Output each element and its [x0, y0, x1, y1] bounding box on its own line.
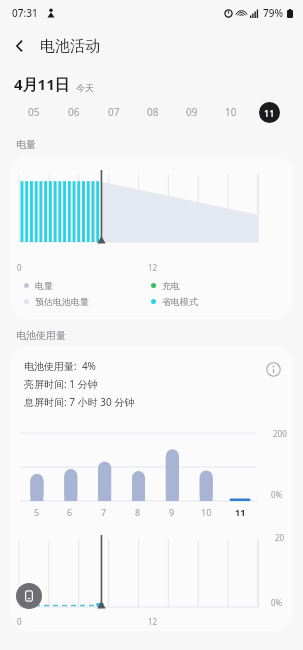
- staticText: 电池使用量: [16, 329, 66, 342]
- button[interactable]: Screen on: [16, 583, 42, 609]
- staticText: 09: [186, 105, 198, 119]
- staticText: 05: [28, 105, 40, 119]
- staticText: 10: [225, 105, 237, 119]
- staticText: 07:31: [12, 6, 38, 20]
- staticText: 0: [17, 262, 22, 273]
- staticText: 0%: [271, 597, 283, 608]
- staticText: 6: [67, 506, 73, 518]
- button[interactable]: Info: [259, 355, 287, 383]
- staticText: 200: [273, 428, 287, 439]
- staticText: 电池活动: [40, 37, 100, 56]
- staticText: 79%: [263, 6, 283, 20]
- staticText: 11: [235, 506, 246, 518]
- button[interactable]: 0: [10, 156, 293, 319]
- staticText: 20: [275, 532, 285, 543]
- staticText: 12: [148, 262, 158, 273]
- staticText: 8: [135, 506, 141, 518]
- button[interactable]: 08: [133, 94, 172, 130]
- staticText: 7: [101, 506, 107, 518]
- button[interactable]: 09: [172, 94, 211, 130]
- staticText: 12: [148, 616, 158, 627]
- staticText: 亮屏时间: 1 分钟: [24, 377, 98, 391]
- staticText: 电量: [35, 280, 53, 291]
- staticText: 省电模式: [162, 296, 198, 307]
- button[interactable]: Back: [0, 26, 40, 66]
- staticText: 5: [34, 506, 40, 518]
- staticText: 息屏时间: 7 小时 30 分钟: [24, 395, 135, 409]
- button[interactable]: 05: [14, 94, 54, 130]
- staticText: 10: [201, 506, 212, 518]
- staticText: 4月11日: [14, 74, 70, 94]
- button[interactable]: 07: [94, 94, 133, 130]
- staticText: 预估电池电量: [35, 296, 89, 307]
- staticText: 06: [68, 105, 80, 119]
- staticText: 0%: [271, 489, 283, 500]
- button[interactable]: 10: [211, 94, 250, 130]
- staticText: 今天: [76, 82, 94, 93]
- staticText: 电量: [16, 138, 36, 151]
- staticText: 9: [169, 506, 175, 518]
- staticText: 0: [17, 616, 22, 627]
- staticText: 电池使用量: 4%: [24, 359, 96, 373]
- staticText: 充电: [162, 280, 180, 291]
- staticText: 07: [108, 105, 120, 119]
- button[interactable]: 11: [250, 94, 289, 130]
- staticText: 11: [264, 107, 275, 119]
- button[interactable]: 06: [54, 94, 94, 130]
- staticText: 08: [147, 105, 159, 119]
